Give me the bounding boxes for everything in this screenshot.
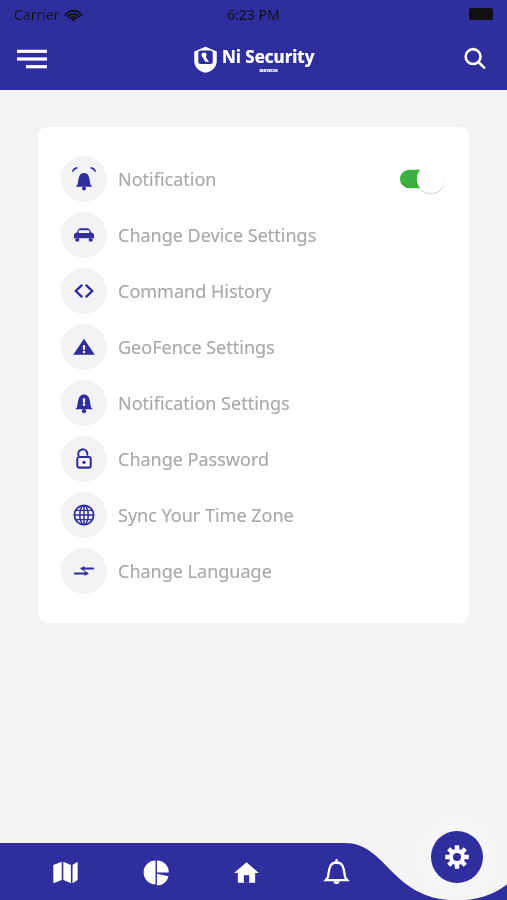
staticText: Notification xyxy=(118,167,217,192)
button[interactable]: Notification toggle xyxy=(400,164,446,194)
staticText: 6:23 PM xyxy=(227,5,280,24)
staticText: Notification Settings xyxy=(118,391,290,416)
button[interactable]: Map xyxy=(39,846,91,898)
staticText: Change Language xyxy=(118,559,272,584)
button[interactable]: Sync Your Time Zone xyxy=(38,487,469,543)
button[interactable]: Change Language xyxy=(38,543,469,599)
staticText: Carrier xyxy=(14,5,60,24)
button[interactable]: GeoFence Settings xyxy=(38,319,469,375)
staticText: Sync Your Time Zone xyxy=(118,503,294,528)
button[interactable]: Statistics xyxy=(129,846,181,898)
staticText: Change Password xyxy=(118,447,270,472)
button[interactable]: Notification Settings xyxy=(38,375,469,431)
button[interactable]: Change Password xyxy=(38,431,469,487)
button[interactable]: Home xyxy=(220,846,272,898)
button[interactable]: Command History xyxy=(38,263,469,319)
button[interactable]: Search xyxy=(451,35,499,83)
button[interactable]: Notification xyxy=(38,151,469,207)
staticText: Command History xyxy=(118,279,272,304)
button[interactable]: Alerts xyxy=(310,846,362,898)
staticText: SERVICES xyxy=(259,68,278,73)
staticText: Ni Security xyxy=(222,45,315,68)
button[interactable]: Settings xyxy=(431,831,483,883)
button[interactable]: Change Device Settings xyxy=(38,207,469,263)
staticText: GeoFence Settings xyxy=(118,335,275,360)
button[interactable]: Menu xyxy=(8,35,56,83)
staticText: Change Device Settings xyxy=(118,223,317,248)
